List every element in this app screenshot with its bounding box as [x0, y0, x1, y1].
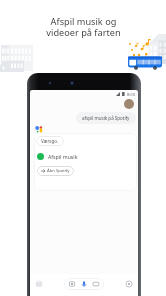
staticText: 8:00: [127, 92, 135, 97]
staticText: Afspil musik: [48, 153, 78, 160]
staticText: Åbn Spotify: [47, 168, 70, 174]
button[interactable]: Updates: [35, 280, 43, 288]
staticText: Afspil musik og videoer på farten: [46, 15, 121, 38]
button[interactable]: Åbn Spotify: [37, 166, 74, 176]
staticText: afspil musik på Spotify: [82, 115, 130, 121]
button[interactable]: Microphone: [81, 281, 87, 287]
button[interactable]: Account: [124, 99, 134, 109]
button[interactable]: Google Lens: [69, 281, 75, 287]
button[interactable]: afspil musik på Spotify: [76, 112, 136, 124]
staticText: Værsgo.: [41, 138, 59, 144]
button[interactable]: Explore: [125, 280, 133, 288]
button[interactable]: Keyboard: [93, 281, 99, 287]
